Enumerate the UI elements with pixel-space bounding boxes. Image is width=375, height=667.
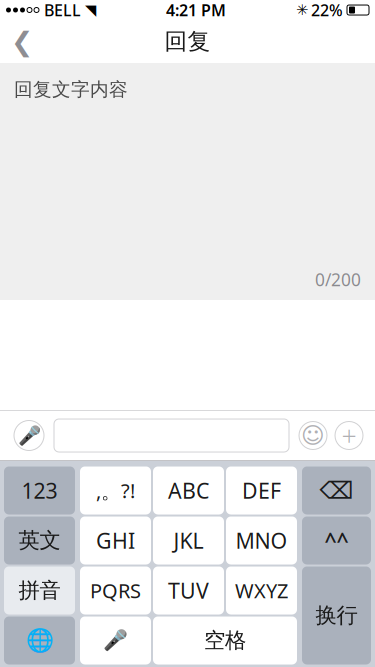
- button[interactable]: ^^: [302, 516, 371, 564]
- staticText: 🌐: [25, 628, 53, 653]
- staticText: ❮: [11, 26, 33, 57]
- staticText: 回复: [164, 28, 210, 55]
- staticText: ^^: [324, 526, 348, 555]
- staticText: 0/200: [315, 268, 361, 291]
- button[interactable]: Emoji: [299, 421, 327, 449]
- staticText: 4:21 PM: [166, 0, 226, 21]
- staticText: DEF: [242, 476, 281, 505]
- button[interactable]: 英文: [4, 516, 75, 564]
- staticText: 英文: [18, 527, 60, 554]
- button[interactable]: Back: [0, 20, 44, 63]
- staticText: 回复文字内容: [14, 78, 128, 101]
- button[interactable]: JKL: [153, 516, 224, 564]
- staticText: ☺: [301, 423, 325, 448]
- button[interactable]: 换行: [302, 566, 371, 664]
- button[interactable]: More: [335, 421, 363, 449]
- button[interactable]: Switch keyboard: [4, 616, 75, 664]
- staticText: TUV: [168, 576, 209, 605]
- button[interactable]: 拼音: [4, 566, 75, 614]
- staticText: ,。?!: [96, 477, 135, 504]
- button[interactable]: ABC: [153, 466, 224, 514]
- staticText: 123: [21, 476, 57, 505]
- button[interactable]: TUV: [153, 566, 224, 614]
- staticText: ◥: [85, 2, 96, 18]
- button[interactable]: ,。?!: [80, 466, 151, 514]
- staticText: ABC: [168, 476, 209, 505]
- staticText: JKL: [173, 526, 203, 555]
- button[interactable]: MNO: [226, 516, 297, 564]
- staticText: GHI: [96, 526, 135, 555]
- button[interactable]: 空格: [153, 616, 297, 664]
- button[interactable]: WXYZ: [226, 566, 297, 614]
- staticText: 换行: [315, 602, 357, 629]
- button[interactable]: Delete: [302, 466, 371, 514]
- staticText: 空格: [204, 627, 246, 654]
- staticText: 🎤: [103, 629, 128, 652]
- button[interactable]: GHI: [80, 516, 151, 564]
- staticText: ✳: [296, 2, 308, 18]
- staticText: WXYZ: [235, 577, 288, 604]
- button[interactable]: DEF: [226, 466, 297, 514]
- staticText: ⌫: [319, 477, 353, 504]
- button[interactable]: Dictation: [80, 616, 151, 664]
- staticText: 拼音: [18, 577, 60, 604]
- button[interactable]: Voice input: [14, 420, 44, 450]
- staticText: 22%: [311, 0, 343, 21]
- staticText: 🎤: [17, 425, 40, 446]
- button[interactable]: PQRS: [80, 566, 151, 614]
- staticText: +: [341, 418, 356, 453]
- staticText: MNO: [235, 526, 287, 555]
- staticText: BELL: [44, 0, 81, 21]
- button[interactable]: 123: [4, 466, 75, 514]
- staticText: PQRS: [90, 577, 141, 604]
- button[interactable]: Message field: [54, 419, 289, 452]
